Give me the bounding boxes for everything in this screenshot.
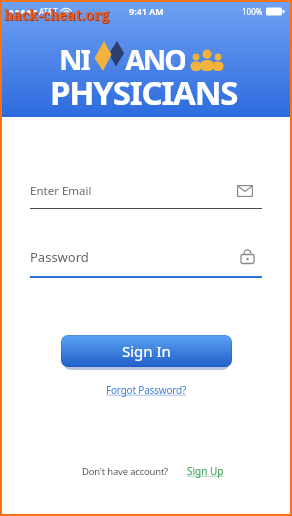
staticText: ANO [125,40,185,70]
staticText: hack-cheat.org [5,6,111,25]
button[interactable]: Sign Up [187,464,224,478]
staticText: Enter Email [30,183,92,199]
staticText: Sign In [122,341,171,361]
staticText: 9:41 AM [129,5,164,17]
button[interactable]: Forgot Password? [106,383,187,397]
staticText: PHYSICIANS [50,70,238,115]
staticText: AT&T [39,6,58,17]
staticText: NI [59,40,90,70]
staticText: Don't have account? [82,465,169,478]
staticText: 100% [242,6,263,17]
button[interactable]: Enter Email [30,183,262,209]
staticText: Password [30,248,89,266]
staticText: hack-cheat.org [4,5,110,24]
button[interactable]: Password [30,248,262,278]
button[interactable]: Sign In [61,335,232,367]
